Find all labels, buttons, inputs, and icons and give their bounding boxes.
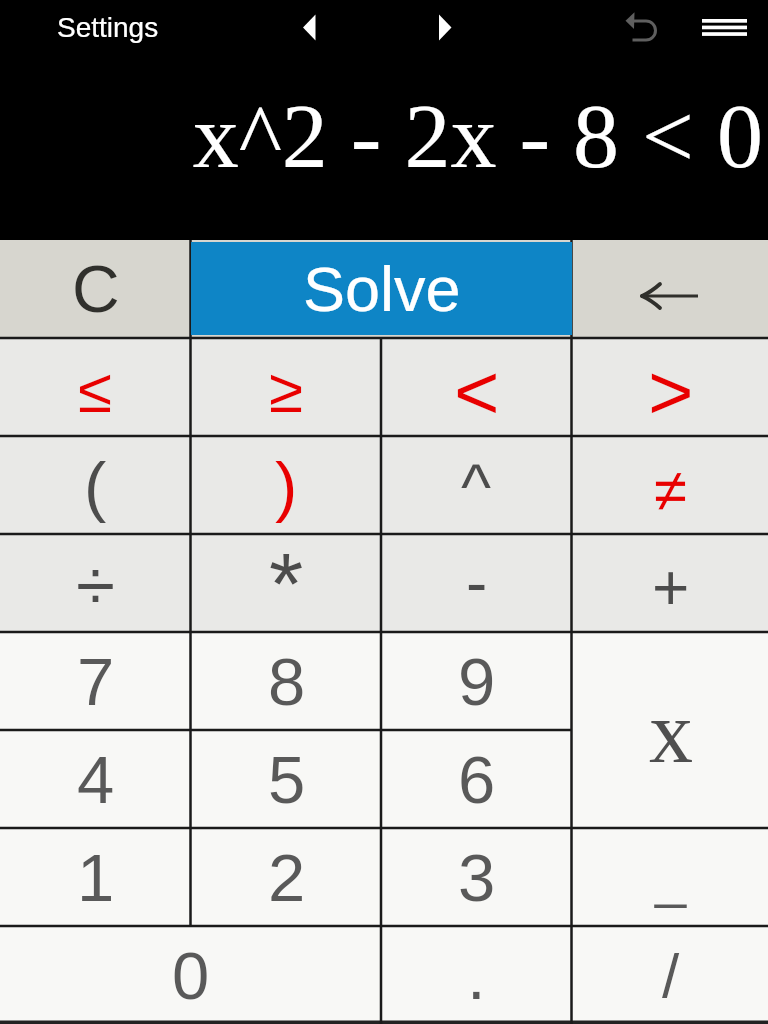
staticText: Settings [57, 12, 159, 43]
button[interactable]: Solve [191, 242, 572, 335]
button[interactable]: 4 [0, 730, 191, 828]
staticText: ÷ [76, 546, 115, 625]
button[interactable]: * [191, 534, 382, 632]
staticText: 1 [77, 840, 115, 915]
staticText: . [467, 938, 486, 1013]
staticText: 7 [77, 644, 115, 719]
button[interactable]: 7 [0, 632, 191, 730]
staticText: C [72, 252, 120, 326]
button[interactable]: - [381, 534, 572, 632]
button[interactable]: 6 [381, 730, 572, 828]
button[interactable]: ≤ [0, 341, 191, 439]
button[interactable]: 2 [191, 828, 382, 926]
button[interactable] [295, 10, 325, 46]
staticText: ) [275, 448, 298, 523]
staticText: 6 [458, 742, 496, 817]
button[interactable]: / [572, 926, 768, 1024]
staticText: x^2 - 2x - 8 < 0 [192, 85, 763, 187]
button[interactable]: ) [191, 436, 382, 534]
staticText: / [662, 941, 680, 1010]
button[interactable]: 9 [381, 632, 572, 730]
staticText: 0 [172, 938, 210, 1013]
staticText: - [466, 547, 488, 619]
staticText: * [269, 534, 304, 632]
staticText: + [652, 552, 690, 624]
staticText: 5 [268, 742, 306, 817]
staticText: ^ [461, 451, 492, 523]
staticText: 8 [268, 644, 306, 719]
button[interactable]: ≥ [191, 341, 382, 439]
button[interactable] [572, 240, 768, 338]
staticText: Solve [303, 254, 461, 324]
staticText: 3 [458, 840, 496, 915]
button[interactable]: x [572, 634, 768, 830]
button[interactable]: < [381, 342, 572, 440]
button[interactable]: ≠ [572, 441, 768, 539]
button[interactable] [618, 6, 662, 50]
button[interactable]: Settings [57, 12, 159, 43]
button[interactable]: > [572, 342, 768, 440]
button[interactable]: 0 [0, 926, 381, 1024]
staticText: ≥ [269, 356, 304, 425]
staticText: x [649, 684, 693, 781]
staticText: _ [655, 846, 687, 909]
button[interactable]: 8 [191, 632, 382, 730]
button[interactable] [696, 13, 754, 43]
button[interactable]: . [381, 926, 572, 1024]
button[interactable]: 1 [0, 828, 191, 926]
button[interactable]: C [0, 240, 191, 338]
button[interactable] [425, 10, 455, 46]
staticText: ( [84, 448, 107, 523]
button[interactable]: _ [572, 828, 768, 926]
button[interactable]: ( [0, 436, 191, 534]
button[interactable]: + [572, 539, 768, 637]
button[interactable]: ÷ [0, 536, 191, 634]
staticText: ≤ [78, 356, 113, 425]
button[interactable]: 5 [191, 730, 382, 828]
staticText: ≠ [654, 457, 687, 524]
staticText: 2 [268, 840, 306, 915]
staticText: > [648, 348, 694, 435]
staticText: < [454, 348, 500, 435]
button[interactable]: 3 [381, 828, 572, 926]
button[interactable]: ^ [381, 438, 572, 536]
staticText: 9 [458, 644, 496, 719]
staticText: 4 [77, 742, 115, 817]
